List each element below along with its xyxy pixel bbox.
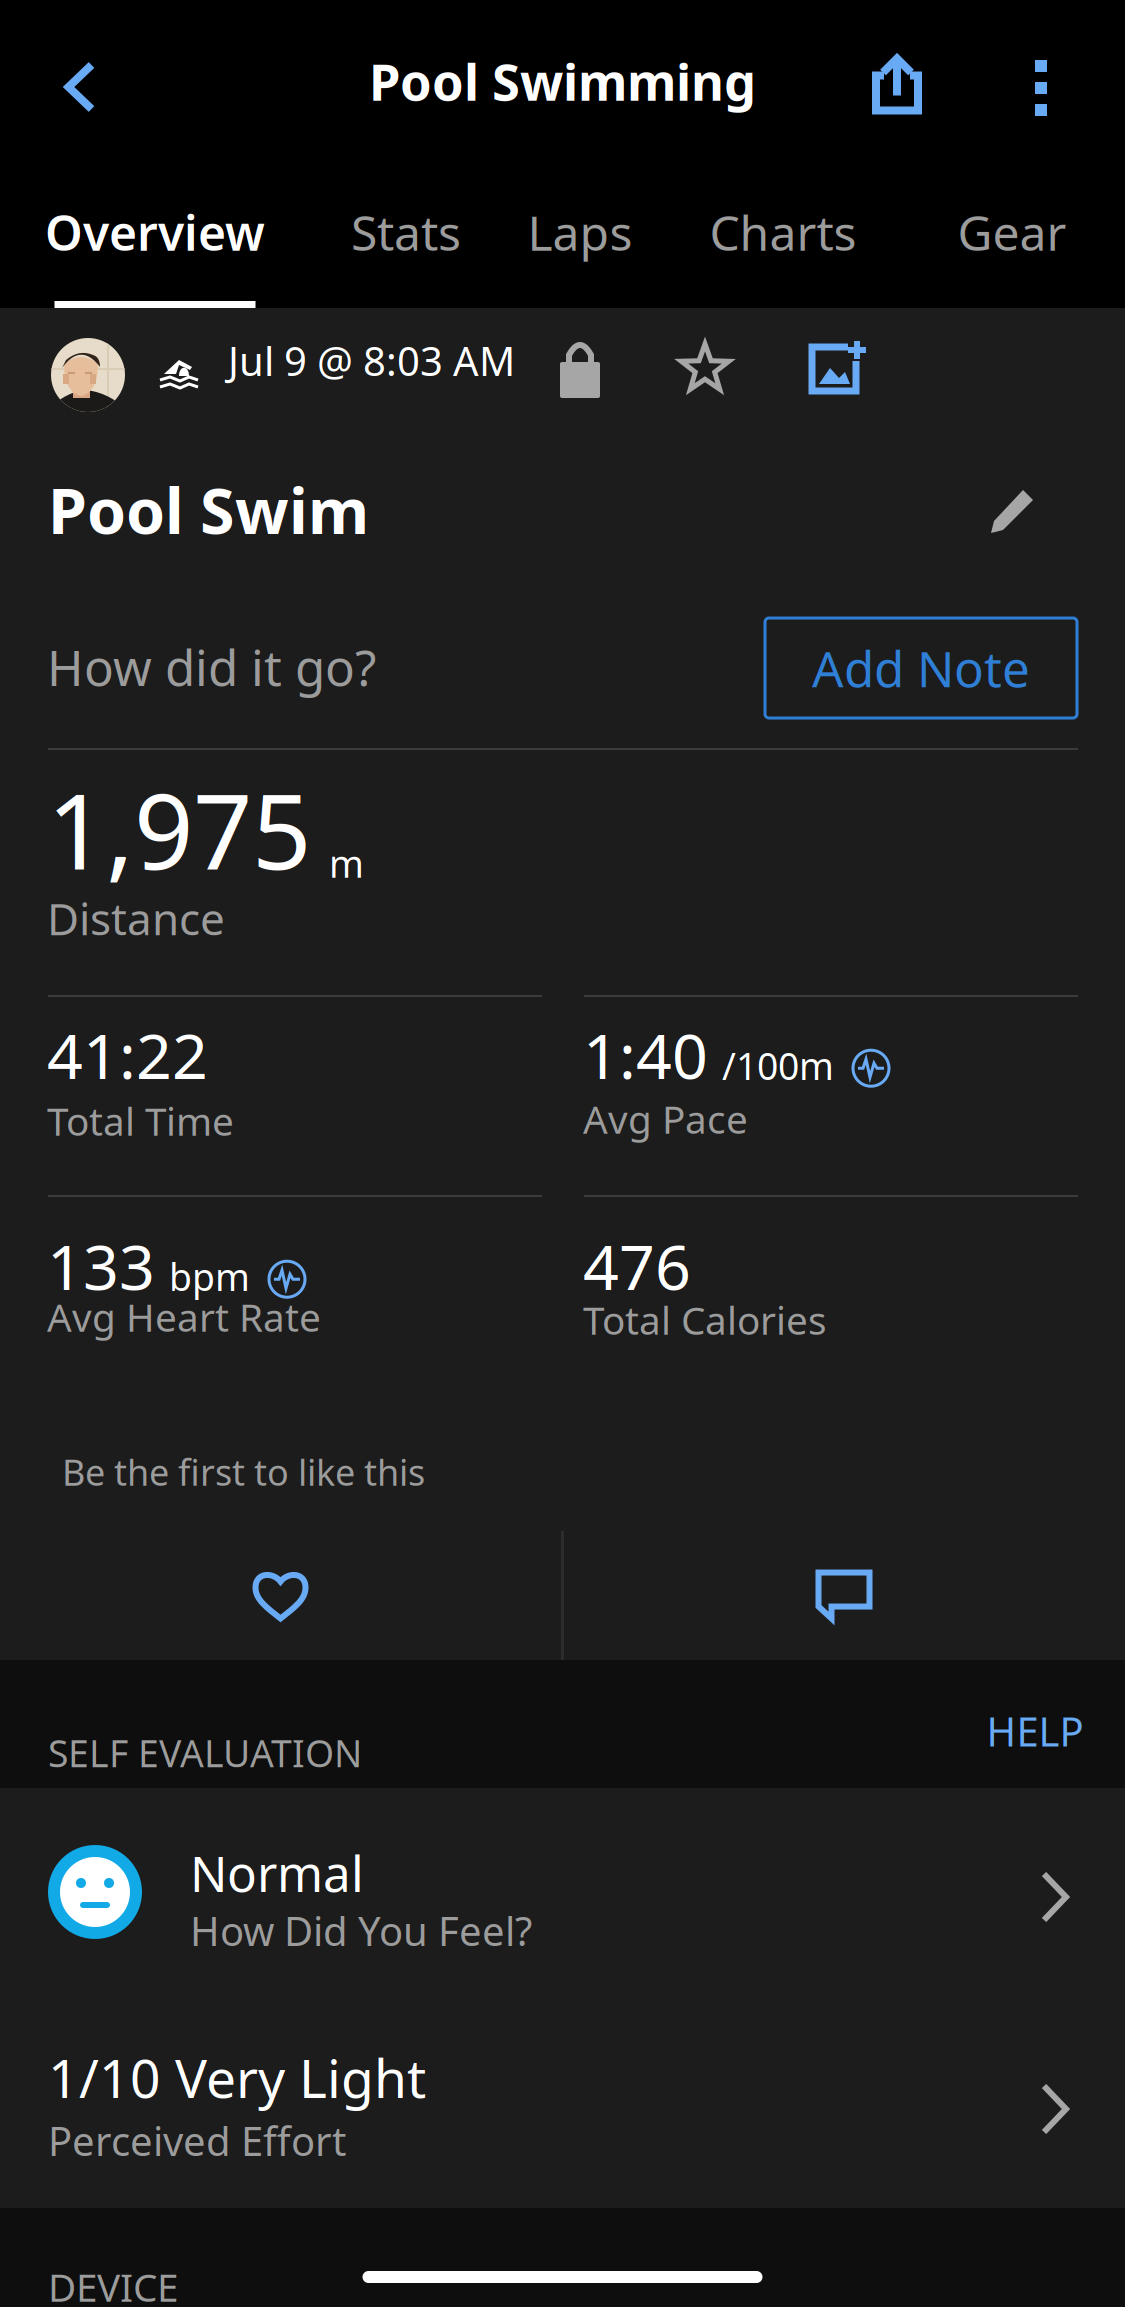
button[interactable]: 1/10 Very Light	[0, 1998, 1125, 2208]
staticText: /100m	[722, 1041, 834, 1090]
staticText: HELP	[986, 1704, 1083, 1757]
button[interactable]: Privacy	[535, 324, 625, 414]
button[interactable]: Laps	[502, 180, 658, 308]
staticText: Add Note	[812, 635, 1030, 701]
staticText: 133	[47, 1224, 155, 1307]
button[interactable]: Comment	[564, 1531, 1125, 1660]
staticText: Pool Swimming	[369, 47, 756, 115]
staticText: Be the first to like this	[62, 1448, 425, 1496]
staticText: Total Time	[47, 1095, 234, 1146]
staticText: Avg Heart Rate	[47, 1291, 321, 1342]
button[interactable]: Gear	[908, 180, 1116, 308]
staticText: 1:40	[583, 1013, 708, 1096]
staticText: 476	[583, 1224, 691, 1307]
button[interactable]: Share	[847, 33, 947, 135]
button[interactable]: Stats	[310, 180, 502, 308]
staticText: Gear	[957, 200, 1066, 264]
staticText: SELF EVALUATION	[48, 1728, 362, 1778]
staticText: Laps	[527, 200, 632, 264]
button[interactable]: Add photo	[790, 324, 886, 414]
staticText: 1/10 Very Light	[48, 2042, 426, 2113]
staticText: Jul 9 @ 8:03 AM	[228, 334, 515, 387]
button[interactable]: Back	[20, 40, 140, 134]
staticText: DEVICE	[48, 2261, 178, 2307]
staticText: Total Calories	[583, 1294, 827, 1345]
staticText: bpm	[169, 1252, 250, 1301]
staticText: 41:22	[47, 1013, 208, 1096]
staticText: How did it go?	[47, 634, 376, 699]
staticText: Avg Pace	[583, 1093, 748, 1144]
staticText: m	[329, 838, 364, 888]
staticText: Overview	[45, 200, 265, 264]
button[interactable]: Overview	[0, 180, 310, 308]
staticText: Stats	[351, 200, 461, 264]
button[interactable]: More options	[985, 37, 1097, 139]
button[interactable]: Add Note	[765, 618, 1077, 718]
button[interactable]: Favorite	[660, 324, 750, 414]
button[interactable]: HELP	[945, 1660, 1125, 1788]
button[interactable]: Edit name	[978, 478, 1048, 548]
staticText: Pool Swim	[48, 468, 369, 551]
staticText: Distance	[47, 889, 225, 947]
staticText: Perceived Effort	[48, 2114, 346, 2167]
staticText: Normal	[190, 1840, 364, 1905]
button[interactable]: Normal	[0, 1788, 1125, 1998]
button[interactable]: Charts	[658, 180, 908, 308]
button[interactable]: Like	[0, 1531, 561, 1660]
staticText: 1,975	[47, 760, 311, 898]
staticText: Charts	[709, 200, 856, 264]
staticText: How Did You Feel?	[190, 1904, 532, 1957]
